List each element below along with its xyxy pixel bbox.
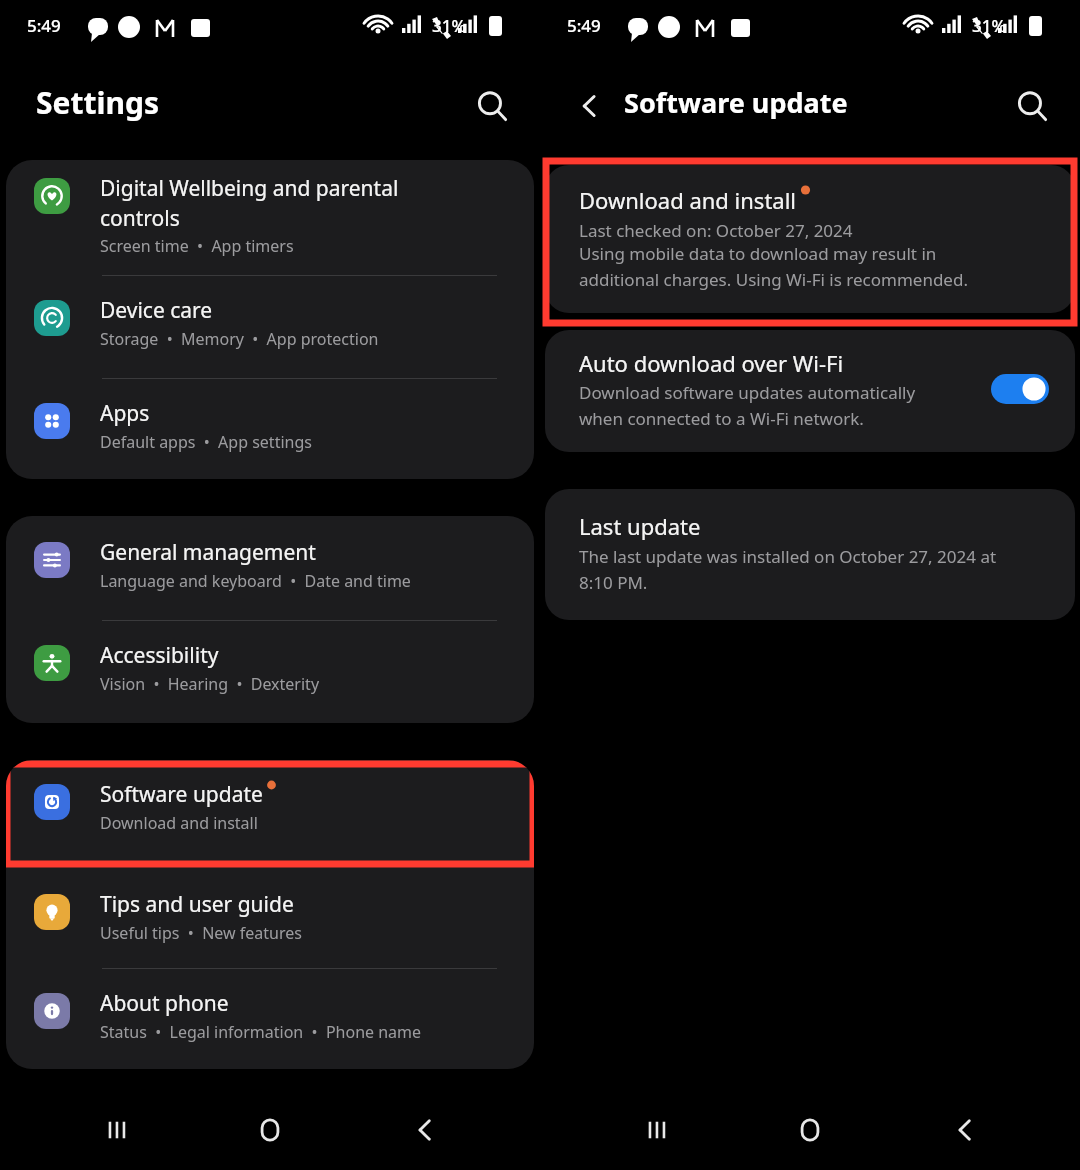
button[interactable]: Last update [545, 489, 1075, 620]
button[interactable]: About phone [6, 969, 534, 1069]
button[interactable]: Home [230, 1090, 310, 1170]
button[interactable]: Home [770, 1090, 850, 1170]
staticText: 5:49 [567, 14, 601, 37]
button[interactable]: Software update [6, 760, 534, 868]
staticText: About phone [100, 989, 229, 1018]
button[interactable]: Search [1004, 78, 1060, 134]
staticText: Download software updates automatically … [579, 381, 916, 430]
button[interactable]: Download and install [545, 165, 1075, 313]
staticText: General management [100, 538, 316, 567]
staticText: The last update was installed on October… [579, 545, 997, 594]
staticText: Screen time • App timers [100, 235, 294, 257]
staticText: Download and install [100, 812, 258, 834]
button[interactable]: Accessibility [6, 621, 534, 723]
staticText: Language and keyboard • Date and time [100, 570, 411, 592]
staticText: Using mobile data to download may result… [579, 242, 968, 291]
staticText: Tips and user guide [100, 890, 294, 919]
button[interactable]: Auto download over Wi-Fi [545, 330, 1075, 452]
staticText: Last update [579, 511, 701, 541]
staticText: Settings [36, 82, 159, 123]
button[interactable]: Auto download over Wi-Fi toggle [991, 374, 1049, 404]
staticText: Download and install [579, 185, 797, 215]
staticText: 31% [432, 14, 466, 37]
button[interactable]: Recent apps [75, 1090, 155, 1170]
staticText: Accessibility [100, 641, 219, 670]
button[interactable]: Recent apps [615, 1090, 695, 1170]
staticText: Useful tips • New features [100, 922, 302, 944]
button[interactable]: Digital Wellbeing and parental controls [6, 160, 534, 275]
button[interactable]: Back [925, 1090, 1005, 1170]
button[interactable]: Back [385, 1090, 465, 1170]
button[interactable]: Back [562, 78, 618, 134]
button[interactable]: Device care [6, 276, 534, 378]
button[interactable]: Search [464, 78, 520, 134]
staticText: Auto download over Wi-Fi [579, 348, 844, 378]
staticText: Status • Legal information • Phone name [100, 1021, 422, 1043]
button[interactable]: Tips and user guide [6, 868, 534, 968]
button[interactable]: Apps [6, 379, 534, 479]
staticText: Last checked on: October 27, 2024 [579, 219, 853, 242]
staticText: Digital Wellbeing and parental controls [100, 174, 399, 232]
staticText: 31% [972, 14, 1006, 37]
staticText: Vision • Hearing • Dexterity [100, 673, 320, 695]
staticText: Default apps • App settings [100, 431, 312, 453]
staticText: Apps [100, 399, 150, 428]
button[interactable]: General management [6, 516, 534, 620]
staticText: Software update [100, 780, 263, 809]
staticText: Device care [100, 296, 213, 325]
staticText: Software update [624, 84, 848, 121]
staticText: Storage • Memory • App protection [100, 328, 379, 350]
staticText: 5:49 [27, 14, 61, 37]
